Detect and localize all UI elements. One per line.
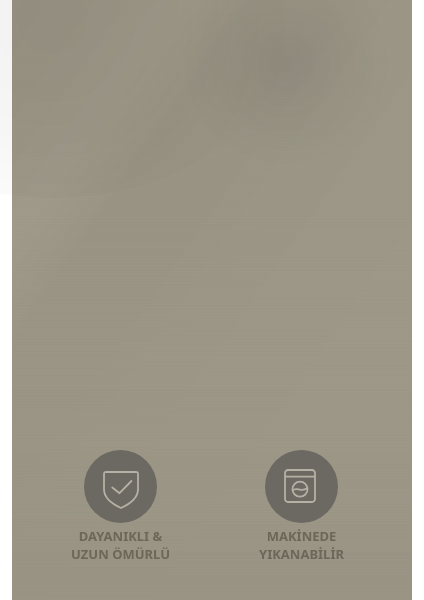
staticText: DAYANIKLI & UZUN ÖMÜRLÜ [71, 527, 170, 562]
staticText: MAKİNEDE YIKANABİLİR [259, 527, 344, 562]
other: Machine washable [285, 470, 315, 502]
other: Durable and long lasting [104, 472, 138, 508]
button[interactable]: Machine washable [241, 450, 361, 562]
button[interactable]: Durable and long lasting [60, 450, 180, 562]
